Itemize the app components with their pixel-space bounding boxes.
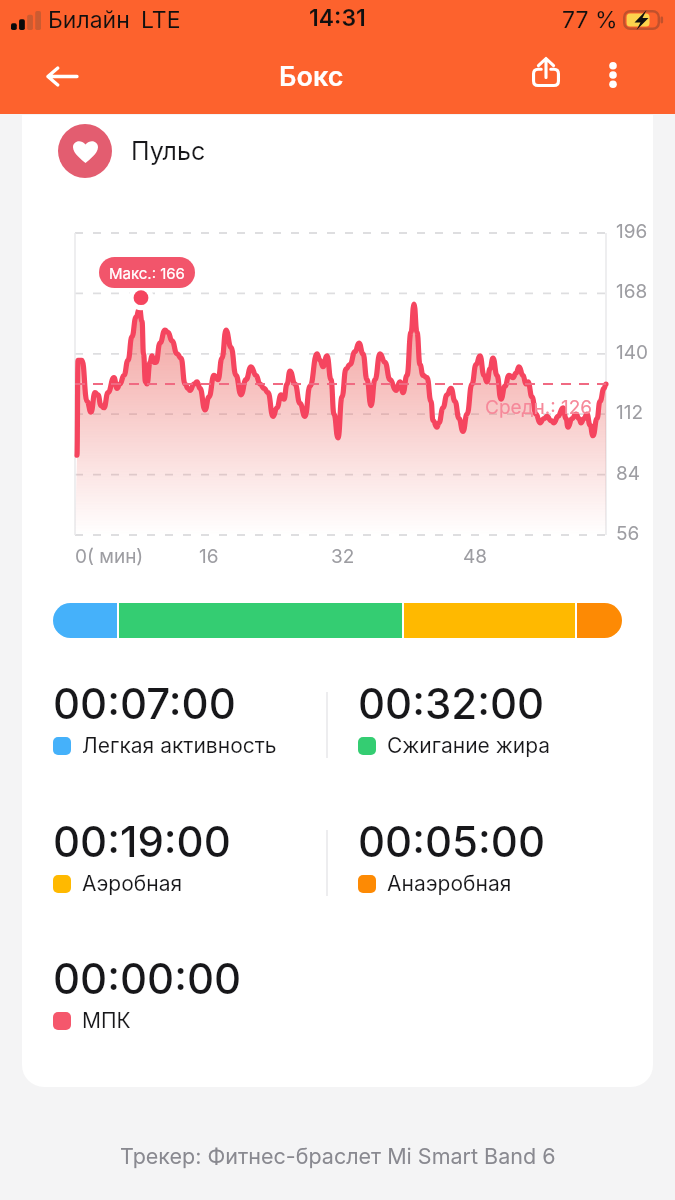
staticText: 112 — [616, 401, 644, 424]
staticText: Трекер: Фитнес-браслет Mi Smart Band 6 — [120, 1143, 556, 1169]
button[interactable]: More options — [587, 49, 639, 101]
staticText: 16 — [199, 545, 219, 568]
staticText: 84 — [616, 462, 641, 485]
staticText: Аэробная — [82, 871, 183, 896]
staticText: 77 % — [562, 6, 618, 34]
button[interactable]: Share — [520, 46, 572, 98]
staticText: 0( мин) — [75, 545, 144, 568]
staticText: 32 — [331, 545, 355, 568]
staticText: 140 — [616, 341, 648, 364]
staticText: 00:00:00 — [53, 953, 242, 1004]
staticText: Средн.: 126 — [485, 396, 593, 419]
staticText: Бокс — [279, 60, 344, 93]
staticText: Пульс — [131, 136, 206, 166]
staticText: 00:19:00 — [53, 816, 231, 867]
staticText: LTE — [141, 6, 181, 34]
staticText: Анаэробная — [387, 871, 512, 896]
staticText: 168 — [616, 280, 648, 303]
button[interactable]: Back — [37, 51, 87, 101]
staticText: 00:07:00 — [53, 678, 236, 729]
staticText: МПК — [82, 1008, 131, 1033]
staticText: 14:31 — [309, 4, 366, 32]
staticText: 196 — [616, 220, 648, 243]
staticText: 56 — [616, 522, 640, 545]
staticText: Сжигание жира — [387, 733, 550, 758]
staticText: Билайн — [48, 6, 130, 34]
staticText: Макс.: 166 — [109, 264, 185, 282]
staticText: Легкая активность — [82, 733, 277, 758]
staticText: 48 — [463, 545, 488, 568]
staticText: 00:05:00 — [358, 816, 545, 867]
staticText: 00:32:00 — [358, 678, 545, 729]
